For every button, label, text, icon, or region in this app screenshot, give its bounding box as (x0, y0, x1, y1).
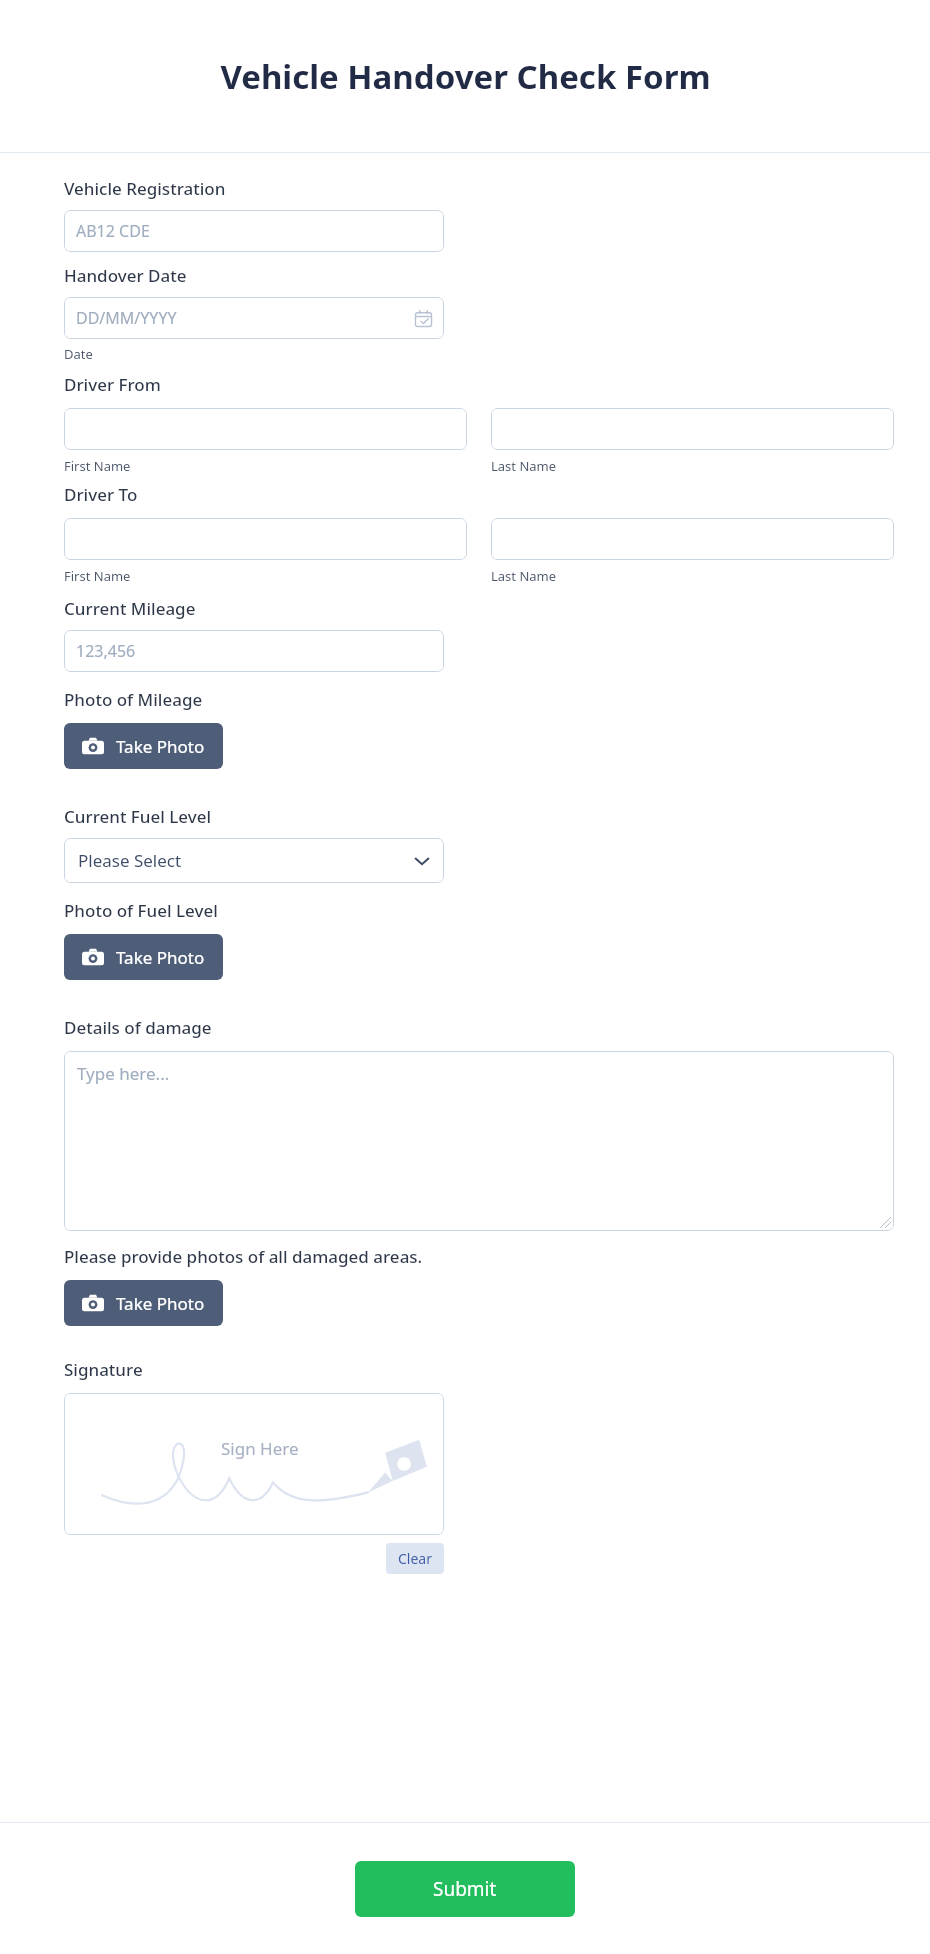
staticText: Clear (398, 1549, 432, 1568)
button[interactable] (64, 518, 467, 560)
button[interactable]: Submit (355, 1861, 575, 1917)
button[interactable]: Type here... (64, 1051, 894, 1231)
staticText: Last Name (491, 457, 557, 475)
staticText: Photo of Mileage (64, 688, 203, 711)
staticText: AB12 CDE (76, 220, 150, 242)
button[interactable]: Take Photo (64, 723, 223, 769)
button[interactable]: 123,456 (64, 630, 444, 672)
staticText: Take Photo (116, 946, 205, 969)
staticText: Signature (64, 1358, 143, 1381)
button[interactable]: AB12 CDE (64, 210, 444, 252)
staticText: Current Fuel Level (64, 805, 212, 828)
button[interactable] (491, 518, 894, 560)
staticText: Date (64, 345, 93, 363)
staticText: Type here... (77, 1062, 170, 1085)
button[interactable] (64, 408, 467, 450)
staticText: Please provide photos of all damaged are… (64, 1245, 423, 1268)
staticText: Vehicle Handover Check Form (220, 54, 711, 99)
staticText: First Name (64, 457, 131, 475)
staticText: Last Name (491, 567, 557, 585)
staticText: Please Select (78, 849, 182, 872)
staticText: Take Photo (116, 1292, 205, 1315)
button[interactable] (491, 408, 894, 450)
staticText: Driver To (64, 483, 138, 506)
button[interactable]: Please Select (64, 838, 444, 883)
staticText: Handover Date (64, 264, 187, 287)
staticText: Driver From (64, 373, 161, 396)
staticText: Take Photo (116, 735, 205, 758)
button[interactable]: Take Photo (64, 1280, 223, 1326)
staticText: Sign Here (221, 1437, 299, 1460)
button[interactable]: Signature pad (64, 1393, 444, 1535)
staticText: Photo of Fuel Level (64, 899, 218, 922)
button[interactable]: DD/MM/YYYY (64, 297, 444, 339)
staticText: Vehicle Registration (64, 177, 226, 200)
staticText: First Name (64, 567, 131, 585)
staticText: Submit (433, 1876, 497, 1902)
staticText: 123,456 (76, 640, 136, 662)
button[interactable]: Take Photo (64, 934, 223, 980)
button[interactable]: Clear (386, 1543, 444, 1574)
staticText: Details of damage (64, 1016, 212, 1039)
staticText: DD/MM/YYYY (76, 307, 177, 329)
staticText: Current Mileage (64, 597, 196, 620)
